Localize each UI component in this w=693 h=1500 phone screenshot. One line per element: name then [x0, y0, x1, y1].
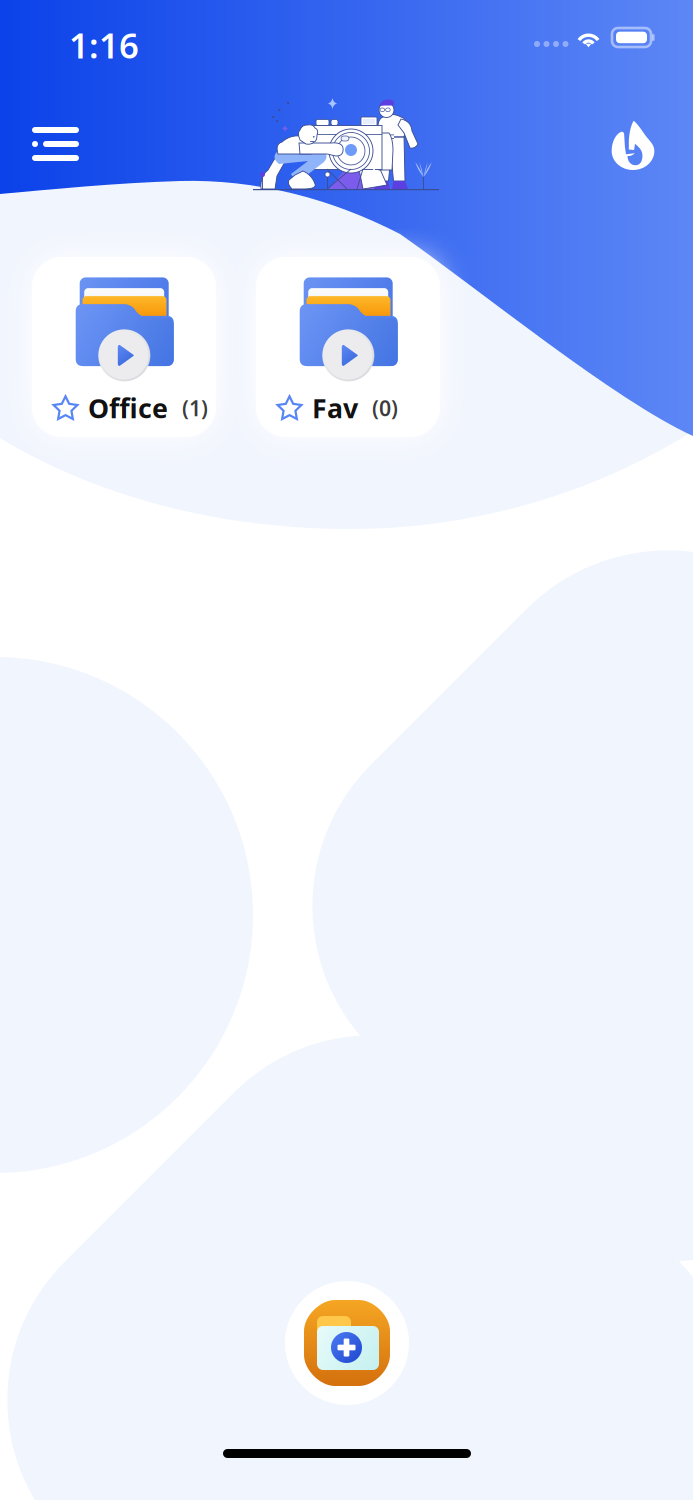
staticText: (0) — [372, 394, 398, 422]
button[interactable]: Add folder — [285, 1281, 409, 1405]
staticText: Office — [88, 390, 168, 426]
button[interactable]: Fav — [256, 257, 440, 437]
button[interactable]: Menu — [20, 116, 91, 172]
staticText: 1:16 — [69, 22, 139, 68]
staticText: (1) — [182, 394, 208, 422]
staticText: Fav — [312, 390, 358, 426]
button[interactable]: Trending — [600, 112, 666, 178]
button[interactable]: Office — [32, 257, 216, 437]
